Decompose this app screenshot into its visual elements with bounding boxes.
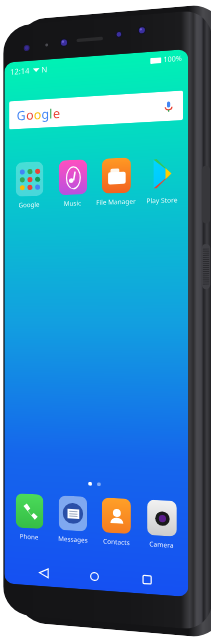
staticText: Camera xyxy=(149,539,174,550)
button[interactable]: Camera xyxy=(139,499,184,550)
staticText: Messages xyxy=(58,534,88,545)
button[interactable]: Google xyxy=(8,161,50,210)
staticText: o xyxy=(26,106,34,124)
staticText: Contacts xyxy=(103,536,130,547)
staticText: e xyxy=(53,104,61,122)
staticText: Play Store xyxy=(146,195,178,205)
staticText: Music xyxy=(64,198,81,208)
button[interactable]: File Manager xyxy=(94,157,138,207)
staticText: N xyxy=(41,63,48,75)
staticText: File Manager xyxy=(96,197,136,207)
staticText: Google xyxy=(19,200,40,209)
button[interactable]: Music xyxy=(51,159,94,208)
staticText: o xyxy=(34,105,41,123)
staticText: g xyxy=(41,105,49,123)
button[interactable]: Messages xyxy=(51,495,94,545)
button[interactable]: Contacts xyxy=(94,497,138,548)
staticText: 100% xyxy=(163,54,182,65)
button[interactable]: G xyxy=(9,90,183,130)
button[interactable]: Recents xyxy=(135,567,159,593)
staticText: l xyxy=(49,104,53,122)
staticText: G xyxy=(17,106,26,124)
staticText: 12:14 xyxy=(10,65,30,77)
button[interactable]: Back xyxy=(32,560,55,585)
button[interactable]: Phone xyxy=(8,493,50,542)
other: Voice search xyxy=(162,100,175,113)
button[interactable]: Play Store xyxy=(139,155,184,205)
staticText: Phone xyxy=(19,532,39,542)
button[interactable]: Home xyxy=(82,563,106,589)
